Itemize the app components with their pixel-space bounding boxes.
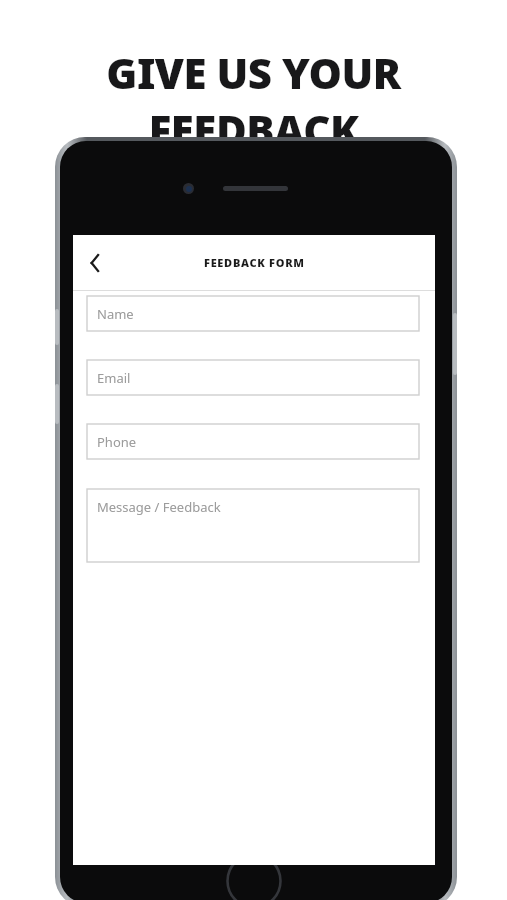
button[interactable]: Phone <box>87 424 419 459</box>
staticText: Name <box>97 305 134 323</box>
staticText: Email <box>97 369 131 387</box>
button[interactable]: Back <box>73 235 117 290</box>
staticText: Phone <box>97 433 137 451</box>
staticText: FEEDBACK FORM <box>204 255 305 270</box>
button[interactable]: Message / Feedback <box>87 489 419 562</box>
button[interactable]: Name <box>87 296 419 331</box>
staticText: Message / Feedback <box>97 498 221 516</box>
button[interactable]: Email <box>87 360 419 395</box>
staticText: GIVE US YOUR FEEDBACK <box>0 44 507 158</box>
